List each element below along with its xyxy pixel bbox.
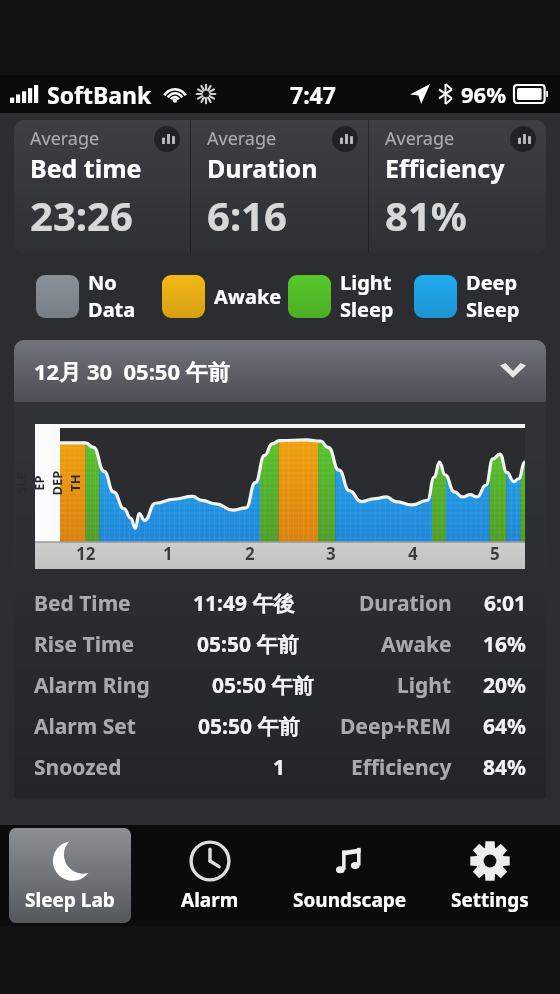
staticText: 96% <box>461 79 507 109</box>
button[interactable]: Sleep Lab <box>9 828 131 923</box>
staticText: Duration <box>359 589 452 618</box>
staticText: 6:16 <box>207 188 287 242</box>
staticText: Snoozed <box>34 753 122 782</box>
staticText: 20% <box>483 671 526 700</box>
staticText: Sleep Lab <box>25 887 115 913</box>
staticText: 05:50 午前 <box>198 712 300 741</box>
staticText: 05:50 午前 <box>212 671 314 700</box>
staticText: Efficiency <box>385 151 505 185</box>
button[interactable]: Average <box>191 120 368 253</box>
staticText: 2 <box>245 542 255 565</box>
staticText: Sleep <box>340 296 394 323</box>
staticText: Average <box>207 126 277 151</box>
staticText: Alarm Set <box>34 712 136 741</box>
staticText: 16% <box>483 630 526 659</box>
staticText: Settings <box>451 887 529 913</box>
button[interactable]: Deep <box>414 269 540 323</box>
staticText: Soundscape <box>293 887 407 913</box>
staticText: Awake <box>214 283 282 310</box>
button[interactable]: Settings <box>420 825 560 926</box>
staticText: 7:47 <box>290 79 336 110</box>
other: Expand <box>500 363 526 379</box>
staticText: 4 <box>408 542 418 565</box>
button[interactable]: Rise Time <box>34 624 526 665</box>
staticText: Alarm Ring <box>34 671 150 700</box>
staticText: Rise Time <box>34 630 135 659</box>
staticText: 6:01 <box>484 589 526 618</box>
staticText: Sleep <box>466 296 520 323</box>
button[interactable]: Average <box>369 120 546 253</box>
staticText: Average <box>385 126 455 151</box>
button[interactable]: Alarm <box>140 825 280 926</box>
other: Settings <box>468 839 512 883</box>
button[interactable]: Alarm Ring <box>34 665 526 706</box>
staticText: Data <box>88 296 136 323</box>
button[interactable]: Average <box>14 120 190 253</box>
button[interactable]: Soundscape <box>280 825 420 926</box>
staticText: Bed Time <box>34 589 131 618</box>
staticText: Alarm <box>181 887 239 913</box>
staticText: Duration <box>207 151 318 185</box>
staticText: 23:26 <box>30 188 133 242</box>
staticText: 81% <box>385 188 467 242</box>
staticText: Bed time <box>30 151 142 185</box>
staticText: No <box>88 269 117 296</box>
button[interactable]: Awake <box>162 275 288 318</box>
staticText: 12 <box>76 542 96 565</box>
staticText: SLEEP DEPTH <box>14 470 83 495</box>
staticText: Deep+REM <box>340 712 452 741</box>
staticText: Light <box>340 269 392 296</box>
staticText: SoftBank <box>47 79 152 110</box>
button[interactable]: Alarm Set <box>34 706 526 747</box>
staticText: 64% <box>483 712 526 741</box>
button[interactable]: Light <box>288 269 414 323</box>
staticText: 1 <box>273 753 286 782</box>
staticText: Awake <box>381 630 452 659</box>
staticText: 1 <box>163 542 173 565</box>
other: Sleep Lab <box>48 839 92 883</box>
staticText: Average <box>30 126 100 151</box>
other: Alarm <box>188 839 232 883</box>
staticText: 84% <box>483 753 526 782</box>
staticText: Deep <box>466 269 518 296</box>
button[interactable]: Snoozed <box>34 747 526 788</box>
button[interactable]: No <box>36 269 162 323</box>
staticText: Light <box>397 671 452 700</box>
staticText: Efficiency <box>351 753 452 782</box>
staticText: 12月 30 05:50 午前 <box>34 356 230 386</box>
staticText: 05:50 午前 <box>197 630 299 659</box>
other: Soundscape <box>328 839 372 883</box>
staticText: 5 <box>490 542 500 565</box>
staticText: 11:49 午後 <box>193 589 295 618</box>
button[interactable]: 12月 30 05:50 午前 <box>14 340 546 402</box>
staticText: 3 <box>326 542 336 565</box>
button[interactable]: Bed Time <box>34 583 526 624</box>
